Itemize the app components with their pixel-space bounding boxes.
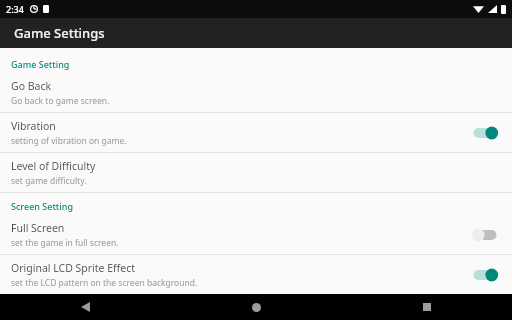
button[interactable]: Home	[232, 294, 280, 320]
staticText: set the game in full screen.	[11, 237, 119, 249]
staticText: set game difficulty.	[11, 175, 87, 187]
button[interactable]: Vibration	[0, 113, 512, 152]
staticText: Vibration	[11, 119, 56, 133]
staticText: Go Back	[11, 79, 52, 93]
staticText: Full Screen	[11, 221, 65, 235]
button[interactable]: Full Screen	[0, 215, 512, 254]
button[interactable]: Level of Difficulty	[0, 153, 512, 192]
staticText: Screen Setting	[11, 200, 73, 212]
button[interactable]: Switch off	[469, 224, 501, 246]
staticText: set the LCD pattern on the screen backgr…	[11, 277, 198, 289]
staticText: Original LCD Sprite Effect	[11, 261, 136, 275]
button[interactable]: Go Back	[0, 73, 512, 112]
button[interactable]: Recents	[403, 294, 451, 320]
staticText: Game Setting	[11, 58, 70, 70]
staticText: Game Settings	[14, 24, 105, 42]
staticText: 2:34	[6, 3, 24, 15]
staticText: Go back to game screen.	[11, 95, 110, 107]
staticText: setting of vibration on game.	[11, 135, 127, 147]
button[interactable]: Switch on	[469, 122, 501, 144]
staticText: Level of Difficulty	[11, 159, 96, 173]
button[interactable]: Switch on	[469, 264, 501, 286]
button[interactable]: Original LCD Sprite Effect	[0, 255, 512, 294]
button[interactable]: Back	[61, 294, 109, 320]
